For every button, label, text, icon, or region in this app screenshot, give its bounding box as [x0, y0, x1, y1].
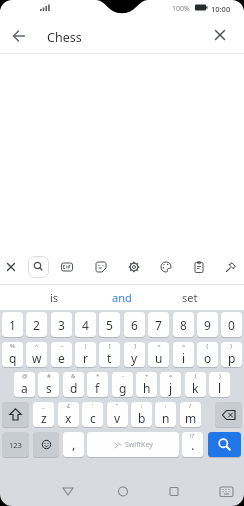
button[interactable]: / [180, 402, 201, 427]
staticText: v [114, 410, 121, 426]
button[interactable]: " [107, 402, 128, 427]
button[interactable] [28, 256, 49, 278]
staticText: & [71, 372, 76, 380]
button[interactable]: ^ [26, 342, 47, 367]
button[interactable]: and [88, 285, 156, 310]
button[interactable] [2, 402, 29, 427]
button[interactable]: ( [185, 372, 206, 397]
button[interactable]: 8 [173, 312, 194, 337]
button[interactable] [156, 257, 176, 277]
button[interactable]: 2 [26, 312, 47, 337]
staticText: # [47, 372, 51, 380]
staticText: h [143, 380, 151, 396]
staticText: . [191, 436, 195, 454]
staticText: is [50, 290, 59, 305]
staticText: " [116, 402, 119, 410]
button[interactable]: _ [33, 402, 54, 427]
button[interactable]: ; [131, 402, 152, 427]
staticText: } [230, 342, 233, 350]
button[interactable]: ~ [51, 342, 72, 367]
button[interactable]: % [2, 342, 23, 367]
staticText: SwiftKey [125, 440, 153, 450]
button[interactable]: < [148, 342, 169, 367]
staticText: 7 [155, 317, 162, 333]
staticText: t [107, 350, 112, 366]
staticText: d [70, 380, 78, 396]
button[interactable]: 4 [75, 312, 96, 337]
button[interactable]: { [197, 342, 218, 367]
button[interactable]: 6 [124, 312, 145, 337]
button[interactable]: 123 [2, 432, 29, 457]
button[interactable]: , [63, 432, 84, 457]
staticText: ] [134, 342, 136, 350]
staticText: + [145, 372, 149, 380]
staticText: s [46, 380, 52, 396]
button[interactable] [33, 432, 59, 457]
staticText: x [65, 410, 72, 426]
button[interactable]: 7 [148, 312, 169, 337]
staticText: | [84, 342, 88, 350]
button[interactable]: | [75, 342, 96, 367]
staticText: and [112, 290, 132, 305]
staticText: = [169, 372, 173, 380]
staticText: 5 [106, 317, 113, 333]
staticText: g [119, 380, 127, 396]
staticText: _ [42, 402, 45, 410]
button[interactable]: * [87, 372, 108, 397]
button[interactable]: & [63, 372, 84, 397]
button[interactable]: + [136, 372, 157, 397]
staticText: 0 [228, 317, 235, 333]
button[interactable]: !? [182, 432, 203, 457]
staticText: Chess [47, 29, 82, 46]
button[interactable] [215, 402, 242, 427]
button[interactable]: : [155, 402, 176, 427]
staticText: set [182, 290, 198, 305]
button[interactable]: } [221, 342, 242, 367]
staticText: 9 [204, 317, 211, 333]
button[interactable]: ) [209, 372, 230, 397]
button[interactable] [2, 258, 19, 276]
button[interactable]: # [38, 372, 59, 397]
staticText: u [155, 350, 163, 366]
staticText: w [32, 350, 42, 366]
button[interactable]: 1 [2, 312, 23, 337]
staticText: 1 [9, 317, 16, 333]
button[interactable] [189, 257, 209, 277]
staticText: 10:00 [211, 4, 231, 14]
button[interactable]: ] [124, 342, 145, 367]
button[interactable]: [ [99, 342, 120, 367]
button[interactable] [124, 257, 144, 277]
button[interactable]: - [112, 372, 133, 397]
staticText: 123 [9, 440, 22, 450]
staticText: k [192, 380, 199, 396]
staticText: r [83, 350, 88, 366]
button[interactable]: ' [82, 402, 103, 427]
button[interactable]: 9 [197, 312, 218, 337]
staticText: ) [219, 372, 221, 380]
button[interactable]: 3 [51, 312, 72, 337]
staticText: £ [67, 402, 71, 410]
staticText: !? [190, 432, 195, 440]
staticText: q [9, 350, 17, 366]
staticText: ~ [60, 342, 64, 350]
button[interactable] [6, 23, 32, 49]
button[interactable]: > [173, 342, 194, 367]
staticText: c [90, 410, 96, 426]
button[interactable]: @ [14, 372, 35, 397]
button[interactable]: 5 [99, 312, 120, 337]
staticText: y [131, 350, 138, 366]
button[interactable] [208, 432, 241, 457]
button[interactable]: = [160, 372, 181, 397]
button[interactable]: SwiftKey [87, 432, 179, 457]
staticText: z [41, 410, 47, 426]
staticText: { [206, 342, 209, 350]
button[interactable]: is [20, 285, 88, 310]
button[interactable] [221, 257, 241, 277]
button[interactable]: set [156, 285, 224, 310]
button[interactable] [91, 257, 111, 277]
button[interactable] [57, 257, 77, 277]
button[interactable] [207, 22, 233, 48]
button[interactable]: 0 [221, 312, 242, 337]
button[interactable]: £ [58, 402, 79, 427]
staticText: e [58, 350, 65, 366]
